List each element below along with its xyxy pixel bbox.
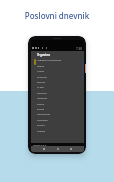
staticText: Porezi [37,107,45,110]
staticText: 7:38 [76,47,82,51]
button[interactable]: Artikli [31,84,84,89]
button[interactable]: Plaćanje [31,74,84,79]
staticText: Izvještaji [37,96,48,99]
button[interactable]: Porezi [31,106,84,111]
staticText: Zalihe [37,102,45,105]
button[interactable]: Dokumenti [31,111,84,116]
staticText: Trgovina [37,53,50,57]
staticText: Partneri [37,91,47,94]
staticText: Računi [37,80,45,83]
staticText: Uredba o fiskalizaciji [37,58,61,61]
staticText: Poslovni dnevnik [0,10,114,21]
button[interactable]: Pomoć [31,122,84,127]
button[interactable]: Odjava [31,128,84,133]
button[interactable]: Novac [31,68,84,73]
staticText: Artikli [37,85,44,88]
staticText: Odjava [37,129,46,132]
staticText: Plaćanje [37,75,47,78]
staticText: Postavke [37,118,48,121]
button[interactable]: Uredba o fiskalizaciji [31,57,84,62]
staticText: Tvrtka d.o.o. [33,143,47,146]
button[interactable]: Zalihe [31,101,84,106]
staticText: Cijena [37,64,45,67]
button[interactable]: Postavke [31,117,84,122]
button[interactable]: Cijena [31,63,84,68]
staticText: Pomoć [37,123,46,126]
staticText: Dokumenti [37,112,51,115]
button[interactable]: Izvještaji [31,95,84,100]
button[interactable]: Partneri [31,90,84,95]
button[interactable]: Računi [31,79,84,84]
staticText: Novac [37,69,45,72]
